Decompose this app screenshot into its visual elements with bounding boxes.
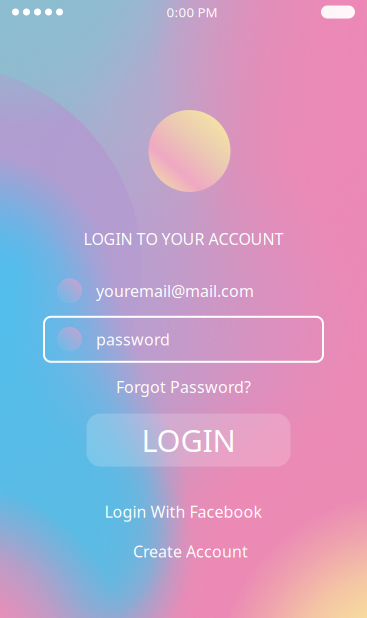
staticText: Create Account <box>133 540 248 562</box>
staticText: LOGIN <box>141 419 235 461</box>
staticText: Forgot Password? <box>116 376 251 398</box>
staticText: 0:00 PM <box>166 3 217 21</box>
staticText: youremail@mail.com <box>96 280 254 302</box>
staticText: Login With Facebook <box>104 501 262 522</box>
staticText: password <box>96 328 170 350</box>
staticText: LOGIN TO YOUR ACCOUNT <box>83 228 283 250</box>
